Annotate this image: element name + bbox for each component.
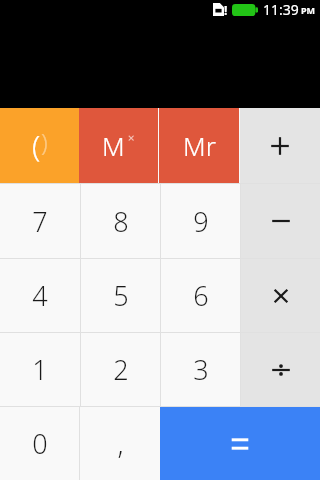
staticText: ,	[117, 425, 124, 462]
staticText: 3	[193, 351, 209, 388]
button[interactable]: 6	[161, 259, 240, 332]
staticText: 11:39	[263, 0, 299, 19]
button[interactable]: 3	[161, 333, 240, 406]
staticText: 8	[113, 203, 129, 240]
staticText: 7	[32, 203, 48, 240]
staticText: Mr	[183, 128, 216, 163]
staticText: 1	[32, 351, 48, 388]
button[interactable]: 4	[0, 259, 80, 332]
button[interactable]: Equals	[160, 407, 320, 480]
button[interactable]: 2	[81, 333, 160, 406]
staticText: 6	[193, 277, 209, 314]
staticText: !	[224, 2, 228, 18]
button[interactable]: 8	[81, 184, 160, 258]
staticText: ×	[128, 130, 135, 145]
staticText: )	[41, 125, 48, 158]
button[interactable]: Memory multiply	[79, 108, 158, 183]
button[interactable]: 9	[161, 184, 240, 258]
button[interactable]: Minus	[241, 184, 320, 258]
button[interactable]: Divide	[241, 333, 320, 406]
button[interactable]: 5	[81, 259, 160, 332]
button[interactable]: Parentheses	[0, 108, 79, 183]
staticText: 4	[32, 277, 48, 314]
button[interactable]: ,	[80, 407, 160, 480]
staticText: 0	[32, 425, 48, 462]
button[interactable]: 1	[0, 333, 80, 406]
staticText: (	[32, 125, 41, 166]
button[interactable]: Multiply	[241, 259, 320, 332]
staticText: 2	[113, 351, 129, 388]
staticText: PM	[301, 4, 316, 16]
button[interactable]: 7	[0, 184, 80, 258]
staticText: M	[102, 128, 125, 163]
button[interactable]: 0	[0, 407, 79, 480]
staticText: 5	[113, 277, 129, 314]
staticText: 9	[193, 203, 209, 240]
button[interactable]: Memory recall	[159, 108, 239, 183]
button[interactable]: Plus	[240, 108, 320, 183]
